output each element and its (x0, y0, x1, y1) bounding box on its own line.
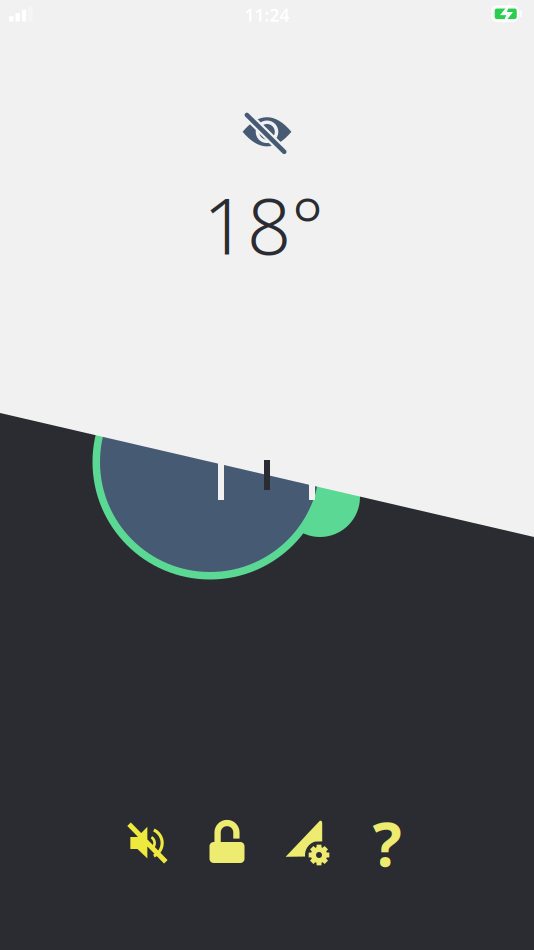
staticText: ? (372, 802, 401, 884)
staticText: 18° (203, 173, 324, 276)
button[interactable]: Unlock (195, 812, 259, 874)
button[interactable]: Mute (115, 812, 179, 874)
button[interactable]: Help (355, 812, 419, 874)
button[interactable]: Signal settings (275, 812, 339, 874)
staticText: 11:24 (244, 3, 289, 26)
